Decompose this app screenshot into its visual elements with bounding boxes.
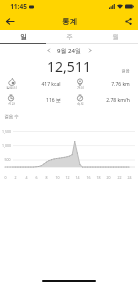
- staticText: 칼로리: [6, 86, 17, 90]
- button[interactable]: 일: [0, 30, 46, 43]
- button[interactable]: Next day: [84, 45, 95, 56]
- staticText: 일: [20, 33, 27, 41]
- staticText: 500: [4, 157, 11, 162]
- staticText: 걸음 수: [4, 113, 19, 119]
- staticText: 18: [96, 175, 101, 180]
- button[interactable]: Back: [0, 12, 20, 30]
- button[interactable]: 시간: [0, 92, 69, 108]
- button[interactable]: 월: [92, 30, 138, 43]
- staticText: 걸음: [121, 68, 130, 73]
- staticText: 월: [112, 33, 119, 41]
- staticText: 8: [45, 175, 48, 180]
- button[interactable]: 속도: [69, 92, 138, 108]
- staticText: 시간: [8, 102, 15, 106]
- staticText: 14: [75, 175, 80, 180]
- staticText: 116 분: [46, 97, 61, 104]
- staticText: 4: [25, 175, 28, 180]
- button[interactable]: Share: [118, 12, 138, 30]
- staticText: 20: [106, 175, 111, 180]
- staticText: 417 kcal: [41, 81, 61, 88]
- staticText: 0: [4, 175, 7, 180]
- staticText: 7.76 km: [111, 81, 130, 88]
- button[interactable]: 거리: [69, 76, 138, 92]
- staticText: 10: [55, 175, 60, 180]
- staticText: 22: [117, 175, 122, 180]
- staticText: 1,500: [2, 129, 11, 134]
- staticText: 2: [14, 175, 17, 180]
- button[interactable]: 주: [46, 30, 92, 43]
- staticText: 거리: [77, 86, 84, 90]
- staticText: 1,000: [2, 143, 11, 148]
- staticText: 12,511: [47, 57, 91, 74]
- staticText: 2.78 km/h: [106, 97, 130, 104]
- staticText: 24: [127, 175, 132, 180]
- staticText: 속도: [77, 102, 84, 106]
- button[interactable]: 칼로리: [0, 76, 69, 92]
- staticText: 12: [65, 175, 70, 180]
- staticText: 통계: [62, 17, 77, 26]
- staticText: 6: [35, 175, 38, 180]
- staticText: 주: [66, 33, 73, 41]
- staticText: 9월 24일: [57, 47, 81, 55]
- button[interactable]: Previous day: [43, 45, 54, 56]
- staticText: 11:45: [10, 2, 27, 11]
- staticText: 16: [86, 175, 91, 180]
